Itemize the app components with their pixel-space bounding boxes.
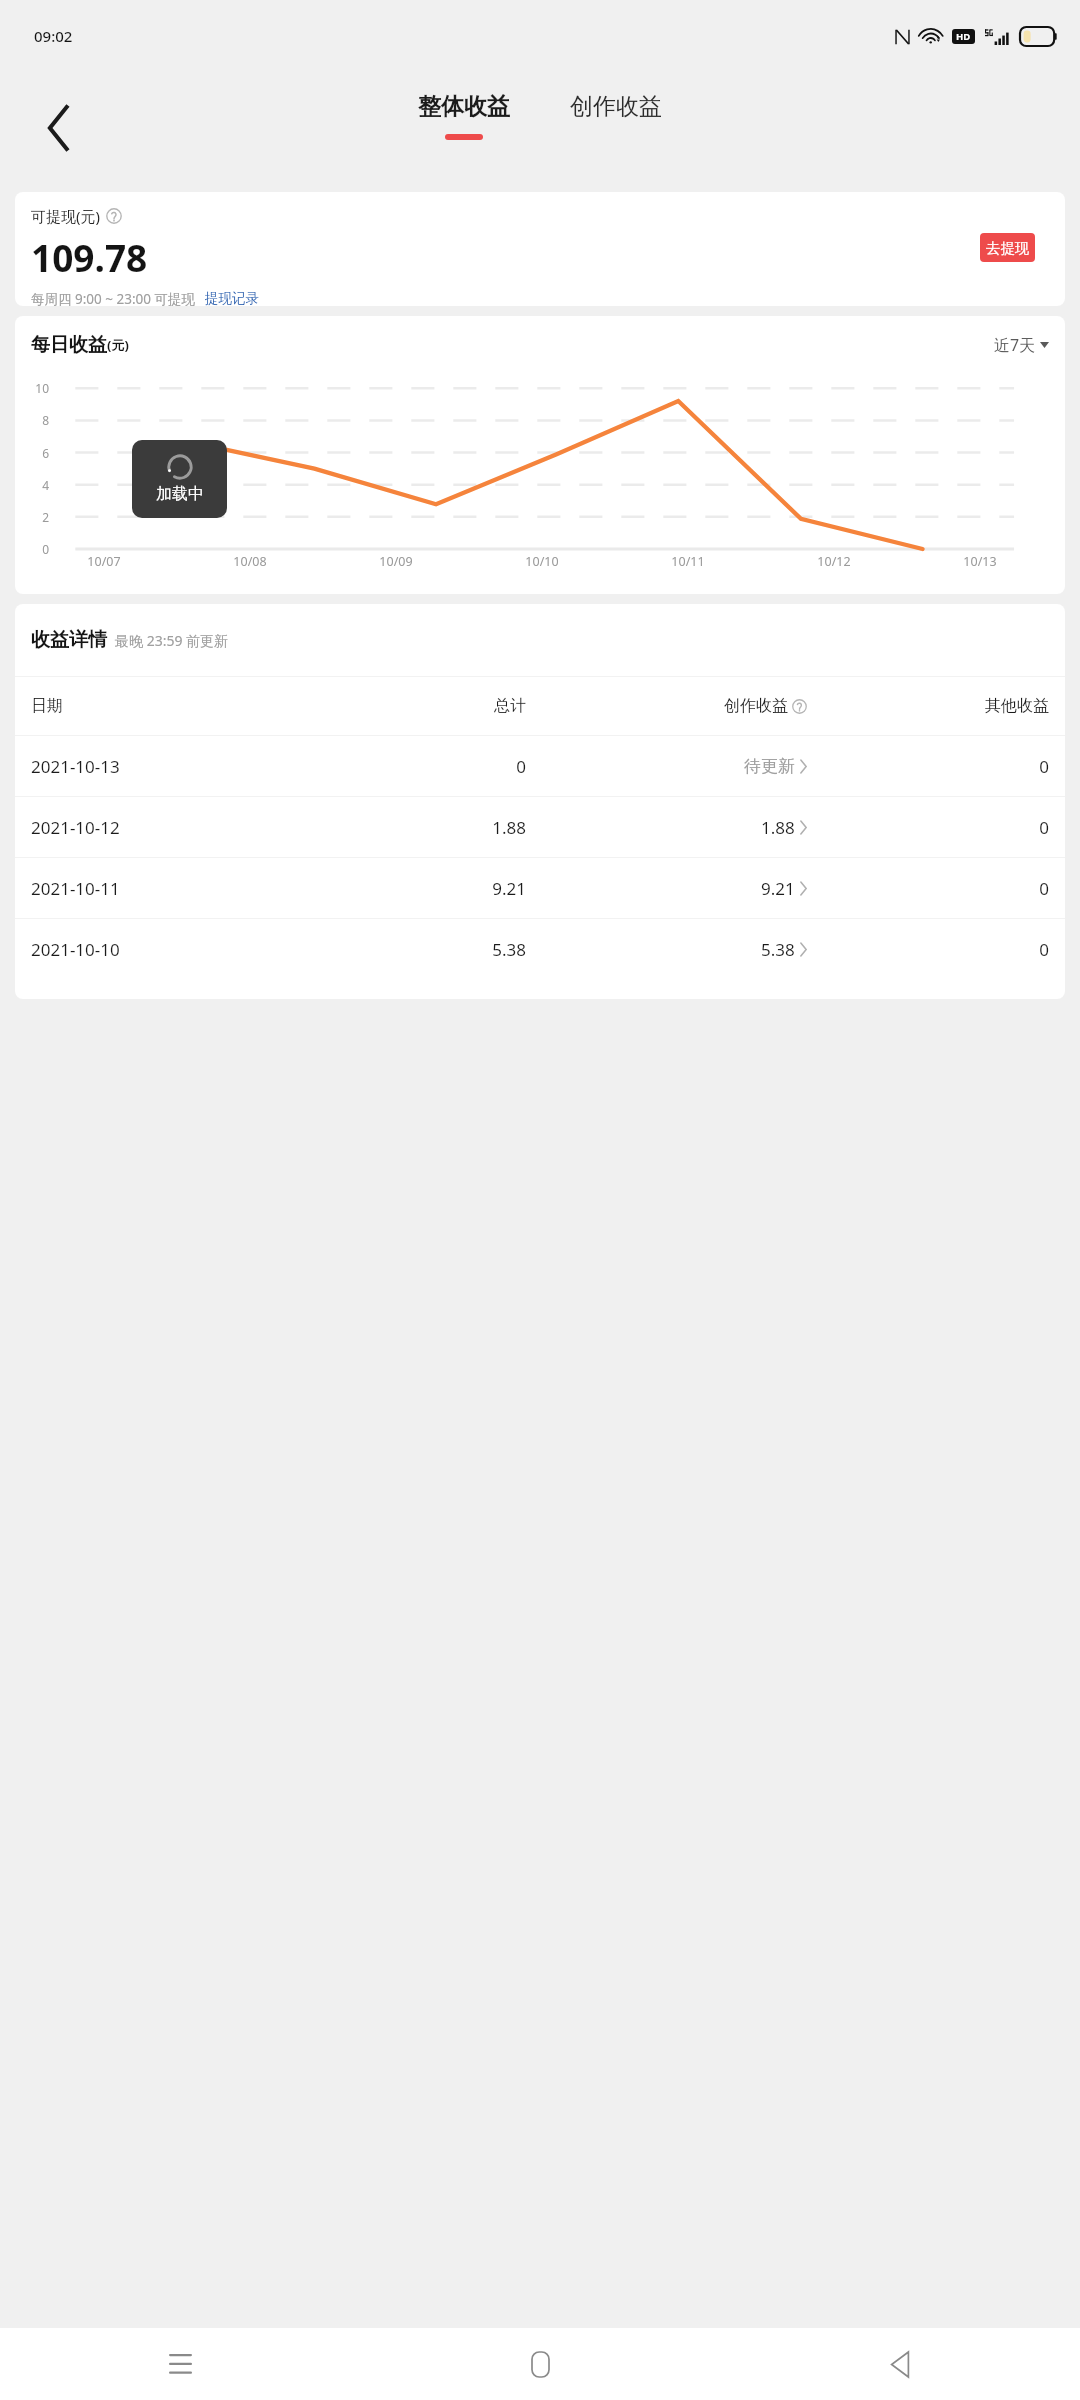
button[interactable]: Home (360, 2328, 720, 2400)
staticText: 10/10 (469, 553, 615, 570)
staticText: 09:02 (34, 26, 73, 46)
button[interactable]: Recents (0, 2328, 360, 2400)
staticText: 2021-10-13 (31, 755, 332, 778)
staticText: 2021-10-10 (31, 938, 332, 961)
button[interactable]: 2021-10-10 (15, 919, 1065, 979)
staticText: 4 (23, 477, 49, 493)
staticText: 10/11 (615, 553, 761, 570)
staticText: (元) (107, 336, 129, 354)
staticText: 2021-10-11 (31, 877, 332, 900)
staticText: 其他收益 (807, 696, 1049, 716)
staticText: HD (956, 30, 971, 43)
staticText: 总计 (332, 696, 526, 716)
staticText: 2 (23, 509, 49, 525)
staticText: 0 (807, 938, 1049, 961)
button[interactable]: 2021-10-11 (15, 858, 1065, 918)
staticText: 8 (23, 412, 49, 428)
button[interactable]: 整体收益 (404, 92, 524, 140)
button[interactable]: 说明 (106, 208, 122, 224)
button[interactable]: 2021-10-13 (15, 736, 1065, 796)
staticText: 加载中 (156, 484, 204, 504)
staticText: 近7天 (994, 334, 1036, 356)
staticText: 5.38 (761, 938, 795, 961)
button[interactable]: 去提现 (980, 233, 1035, 262)
staticText: 10/13 (907, 553, 1053, 570)
staticText: 2021-10-12 (31, 816, 332, 839)
staticText: 去提现 (986, 239, 1030, 257)
button[interactable]: 提现记录 (205, 290, 259, 306)
staticText: 1.88 (332, 816, 526, 839)
button[interactable]: 创作收益 (556, 92, 676, 121)
button[interactable]: Back (720, 2328, 1080, 2400)
staticText: 每周四 9:00 ~ 23:00 可提现 (31, 290, 196, 306)
button[interactable]: 近7天 (994, 334, 1049, 356)
staticText: 可提现(元) (31, 206, 101, 226)
staticText: 5.38 (332, 938, 526, 961)
staticText: 收益详情 (31, 628, 107, 652)
staticText: 10/12 (761, 553, 907, 570)
staticText: 109.78 (31, 232, 148, 282)
staticText: 创作收益 (724, 696, 788, 716)
staticText: 待更新 (744, 756, 795, 777)
staticText: 最晚 23:59 前更新 (115, 631, 229, 650)
staticText: 0 (23, 541, 49, 557)
button[interactable]: 2021-10-12 (15, 797, 1065, 857)
staticText: 0 (807, 816, 1049, 839)
button[interactable]: 创作收益 (526, 696, 807, 716)
staticText: 10/09 (323, 553, 469, 570)
staticText: 0 (807, 877, 1049, 900)
staticText: 10/07 (31, 553, 177, 570)
staticText: 提现记录 (205, 290, 259, 306)
staticText: 日期 (31, 696, 332, 716)
staticText: 1.88 (761, 816, 795, 839)
staticText: 6 (23, 445, 49, 461)
button[interactable]: 返回 (24, 93, 94, 163)
staticText: 每日收益 (31, 333, 107, 357)
staticText: 10 (23, 380, 49, 396)
staticText: 9.21 (761, 877, 795, 900)
staticText: 整体收益 (418, 92, 510, 121)
staticText: 0 (332, 755, 526, 778)
staticText: 0 (807, 755, 1049, 778)
staticText: 10/08 (177, 553, 323, 570)
staticText: 9.21 (332, 877, 526, 900)
staticText: 创作收益 (570, 92, 662, 121)
